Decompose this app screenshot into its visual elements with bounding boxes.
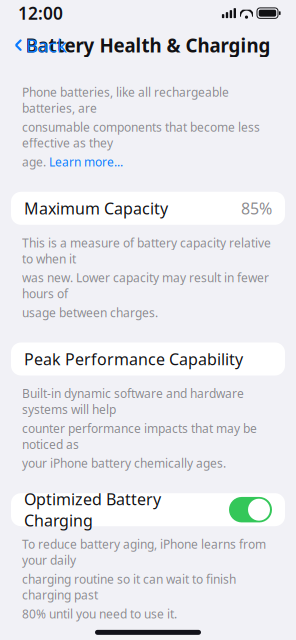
staticText: Maximum Capacity: [24, 198, 168, 219]
staticText: Optimized Battery Charging: [24, 488, 161, 531]
staticText: Built-in dynamic software and hardware s…: [22, 385, 244, 417]
staticText: 12:00: [18, 2, 63, 25]
staticText: your iPhone battery chemically ages.: [22, 455, 226, 471]
staticText: consumable components that become less e…: [22, 119, 260, 151]
staticText: Phone batteries, like all rechargeable b…: [22, 84, 229, 116]
staticText: Peak Performance Capability: [24, 348, 243, 370]
staticText: This is a measure of battery capacity re…: [22, 235, 271, 267]
button[interactable]: Peak Performance Capability: [0, 342, 296, 375]
staticText: Back: [26, 33, 67, 57]
staticText: was new. Lower capacity may result in fe…: [22, 270, 269, 302]
staticText: usage between charges.: [22, 305, 158, 320]
staticText: To reduce battery aging, iPhone learns f…: [22, 536, 266, 568]
staticText: 80% until you need to use it.: [22, 606, 177, 622]
staticText: age.: [22, 154, 49, 170]
staticText: charging routine so it can wait to finis…: [22, 571, 236, 603]
staticText: 85%: [241, 198, 272, 219]
button[interactable]: Learn more...: [49, 154, 123, 170]
staticText: Learn more...: [49, 154, 123, 170]
button[interactable]: Optimized Battery Charging: [0, 493, 296, 526]
staticText: Battery Health & Charging: [25, 33, 270, 57]
staticText: counter performance impacts that may be …: [22, 420, 257, 452]
button[interactable]: Back: [4, 27, 77, 63]
